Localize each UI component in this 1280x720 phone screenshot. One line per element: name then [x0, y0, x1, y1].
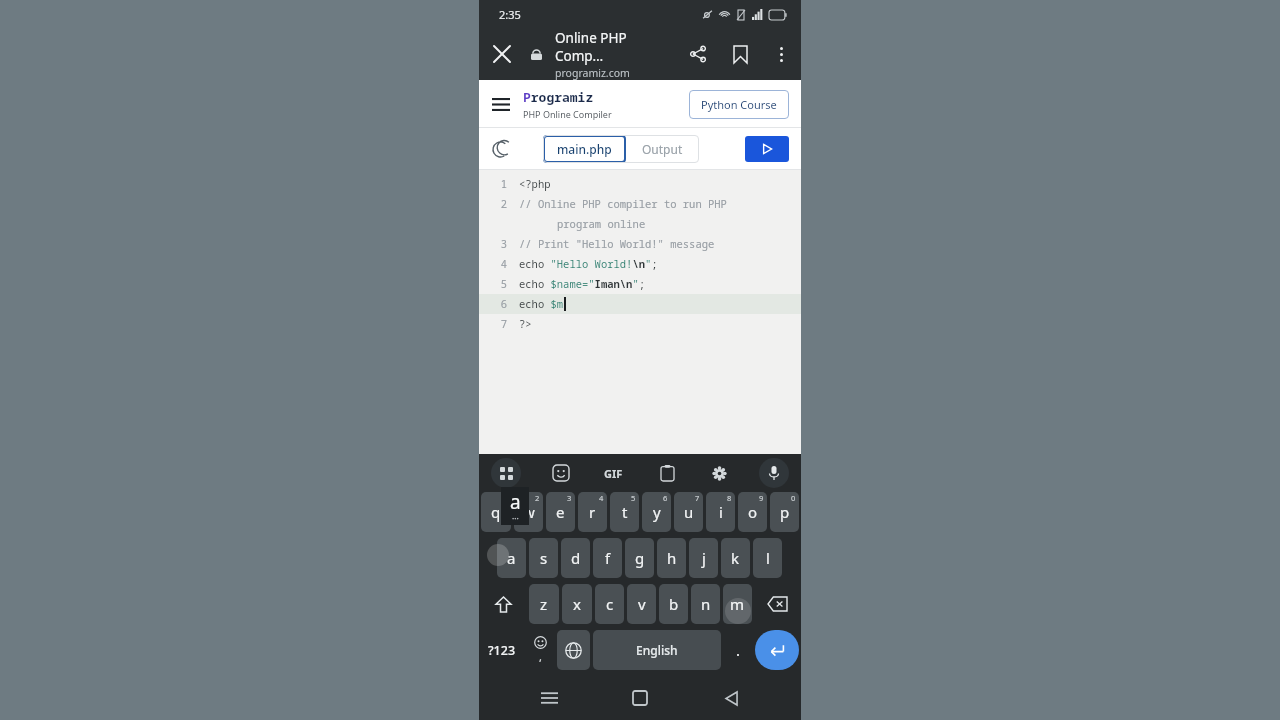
button[interactable]: Change language: [557, 630, 590, 670]
staticText: 7: [479, 317, 507, 331]
button[interactable]: q: [481, 492, 511, 532]
button[interactable]: Bookmark: [719, 33, 761, 75]
staticText: English: [636, 642, 678, 658]
staticText: 0: [791, 493, 796, 503]
button[interactable]: v: [627, 584, 656, 624]
staticText: // Print "Hello World!" message: [519, 237, 715, 251]
button[interactable]: Shift: [481, 584, 526, 624]
staticText: Output: [642, 141, 683, 157]
button[interactable]: c: [595, 584, 624, 624]
staticText: Python Course: [701, 97, 777, 112]
button[interactable]: Share: [677, 33, 719, 75]
staticText: g: [635, 548, 645, 568]
staticText: z: [540, 594, 548, 614]
button[interactable]: main.php: [543, 135, 626, 163]
button[interactable]: o: [738, 492, 767, 532]
staticText: <?php: [519, 177, 551, 191]
staticText: d: [571, 548, 581, 568]
button[interactable]: More options: [761, 34, 801, 74]
button[interactable]: h: [657, 538, 686, 578]
staticText: t: [622, 502, 628, 522]
staticText: i: [719, 502, 723, 522]
button[interactable]: b: [659, 584, 688, 624]
button[interactable]: Recents: [527, 676, 571, 720]
button[interactable]: a: [497, 538, 526, 578]
button[interactable]: Run: [745, 136, 789, 162]
staticText: w: [523, 502, 535, 522]
button[interactable]: .: [724, 630, 752, 670]
staticText: program online: [557, 217, 646, 231]
staticText: 9: [759, 493, 764, 503]
staticText: 3: [479, 237, 507, 251]
staticText: x: [573, 594, 581, 614]
staticText: s: [540, 548, 548, 568]
button[interactable]: Stickers: [548, 460, 574, 486]
button[interactable]: d: [561, 538, 590, 578]
staticText: v: [638, 594, 646, 614]
staticText: 5: [479, 277, 507, 291]
button[interactable]: English: [593, 630, 721, 670]
button[interactable]: Clipboard: [654, 460, 680, 486]
staticText: 8: [727, 493, 732, 503]
button[interactable]: w: [514, 492, 543, 532]
button[interactable]: f: [593, 538, 622, 578]
button[interactable]: ?123: [481, 630, 523, 670]
staticText: u: [684, 502, 694, 522]
button[interactable]: Close: [479, 31, 525, 77]
button[interactable]: Menu: [479, 82, 523, 126]
button[interactable]: r: [578, 492, 607, 532]
button[interactable]: Voice input: [759, 458, 789, 488]
staticText: •••: [512, 515, 519, 523]
staticText: 2: [535, 493, 540, 503]
staticText: GIF: [604, 466, 623, 481]
button[interactable]: Home: [618, 676, 662, 720]
button[interactable]: Output: [626, 135, 699, 163]
button[interactable]: Toggle dark mode: [479, 128, 521, 170]
button[interactable]: Settings: [706, 460, 732, 486]
staticText: 3: [567, 493, 572, 503]
button[interactable]: Back: [710, 676, 754, 720]
staticText: Programiz: [523, 88, 594, 106]
staticText: 6: [479, 297, 507, 311]
staticText: h: [667, 548, 677, 568]
staticText: 7: [695, 493, 700, 503]
staticText: o: [748, 502, 758, 522]
button[interactable]: s: [529, 538, 558, 578]
button[interactable]: Enter: [755, 630, 799, 670]
staticText: f: [605, 548, 611, 568]
button[interactable]: j: [689, 538, 718, 578]
button[interactable]: Python Course: [689, 90, 789, 119]
staticText: b: [669, 594, 679, 614]
button[interactable]: u: [674, 492, 703, 532]
button[interactable]: Emoji: [526, 630, 554, 670]
button[interactable]: g: [625, 538, 654, 578]
staticText: y: [653, 502, 661, 522]
staticText: c: [606, 594, 614, 614]
button[interactable]: e: [546, 492, 575, 532]
button[interactable]: z: [529, 584, 559, 624]
staticText: a: [507, 548, 516, 568]
staticText: 4: [479, 257, 507, 271]
staticText: k: [731, 548, 740, 568]
staticText: 2: [479, 197, 507, 211]
button[interactable]: t: [610, 492, 639, 532]
button[interactable]: Toolbar: [491, 458, 521, 488]
button[interactable]: Backspace: [755, 584, 799, 624]
staticText: 6: [663, 493, 668, 503]
button[interactable]: m: [723, 584, 752, 624]
button[interactable]: n: [691, 584, 720, 624]
button[interactable]: l: [753, 538, 782, 578]
staticText: echo $name="Iman\n";: [519, 277, 645, 291]
button[interactable]: i: [706, 492, 735, 532]
button[interactable]: k: [721, 538, 750, 578]
button[interactable]: GIF: [600, 462, 627, 485]
staticText: ?123: [488, 642, 516, 659]
button[interactable]: y: [642, 492, 671, 532]
staticText: // Online PHP compiler to run PHP: [519, 197, 727, 211]
staticText: n: [701, 594, 711, 614]
button[interactable]: x: [562, 584, 592, 624]
button[interactable]: p: [770, 492, 799, 532]
staticText: a: [510, 489, 521, 515]
staticText: main.php: [557, 141, 612, 157]
